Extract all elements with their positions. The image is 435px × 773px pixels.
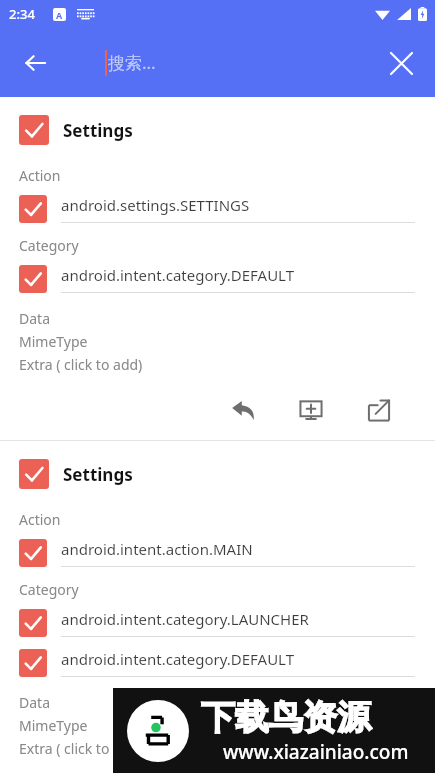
staticText: Action bbox=[19, 510, 61, 529]
button[interactable]: Checked bbox=[19, 609, 47, 637]
button[interactable]: Back bbox=[12, 39, 60, 87]
staticText: 搜索... bbox=[108, 51, 156, 74]
button[interactable]: Checked bbox=[19, 539, 415, 567]
staticText: Category bbox=[19, 236, 79, 255]
button[interactable]: Reply bbox=[221, 388, 265, 432]
staticText: Data bbox=[19, 309, 50, 328]
button[interactable]: Checked bbox=[19, 115, 435, 145]
staticText: Category bbox=[19, 580, 79, 599]
button[interactable]: Checked bbox=[19, 649, 47, 677]
staticText: Extra ( click to add) bbox=[19, 355, 143, 374]
button[interactable]: Add shortcut bbox=[289, 388, 333, 432]
button[interactable]: Checked bbox=[19, 265, 415, 293]
staticText: 下载鸟资源 bbox=[201, 696, 371, 739]
staticText: android.intent.category.DEFAULT bbox=[61, 649, 294, 669]
staticText: 2:34 bbox=[9, 5, 35, 23]
button[interactable]: Extra ( click to add) bbox=[19, 355, 143, 374]
button[interactable]: Checked bbox=[19, 459, 435, 489]
staticText: android.intent.category.LAUNCHER bbox=[61, 609, 309, 629]
button[interactable]: Checked bbox=[19, 459, 49, 489]
button[interactable]: Checked bbox=[19, 265, 47, 293]
staticText: Extra ( click to add) bbox=[19, 739, 143, 758]
button[interactable]: Checked bbox=[19, 195, 415, 223]
button[interactable]: Open in new bbox=[357, 388, 401, 432]
staticText: A bbox=[56, 9, 63, 21]
staticText: android.intent.action.MAIN bbox=[61, 539, 253, 559]
button[interactable]: Extra ( click to add) bbox=[19, 739, 143, 758]
staticText: Action bbox=[19, 166, 61, 185]
button[interactable]: Checked bbox=[19, 649, 415, 677]
staticText: Settings bbox=[63, 463, 133, 486]
staticText: www.xiazainiao.com bbox=[223, 739, 409, 765]
staticText: MimeType bbox=[19, 332, 88, 351]
staticText: android.settings.SETTINGS bbox=[61, 195, 250, 215]
button[interactable]: Checked bbox=[19, 539, 47, 567]
button[interactable]: Checked bbox=[19, 195, 47, 223]
button[interactable]: Checked bbox=[19, 609, 415, 637]
button[interactable]: Clear search bbox=[377, 39, 425, 87]
staticText: MimeType bbox=[19, 716, 88, 735]
staticText: Data bbox=[19, 693, 50, 712]
button[interactable]: Checked bbox=[19, 115, 49, 145]
staticText: Settings bbox=[63, 119, 133, 142]
staticText: android.intent.category.DEFAULT bbox=[61, 265, 294, 285]
